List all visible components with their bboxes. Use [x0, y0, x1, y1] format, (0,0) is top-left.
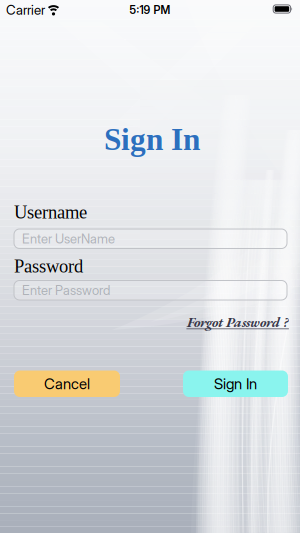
staticText: Cancel [44, 375, 90, 393]
staticText: 5:19 PM [129, 3, 170, 17]
staticText: Enter Password [22, 282, 110, 298]
button[interactable]: Enter Password [14, 280, 287, 300]
staticText: Forgot Password ? [187, 313, 288, 331]
button[interactable]: Forgot Password ? [187, 313, 288, 331]
button[interactable]: Enter UserName [14, 229, 287, 248]
staticText: Carrier [6, 2, 45, 18]
staticText: Sign In [104, 122, 200, 157]
button[interactable]: Cancel [14, 370, 120, 397]
staticText: Enter UserName [22, 231, 115, 247]
button[interactable]: Sign In [183, 370, 288, 397]
staticText: Username [14, 202, 87, 222]
staticText: Sign In [214, 375, 257, 393]
staticText: Password [14, 256, 83, 276]
